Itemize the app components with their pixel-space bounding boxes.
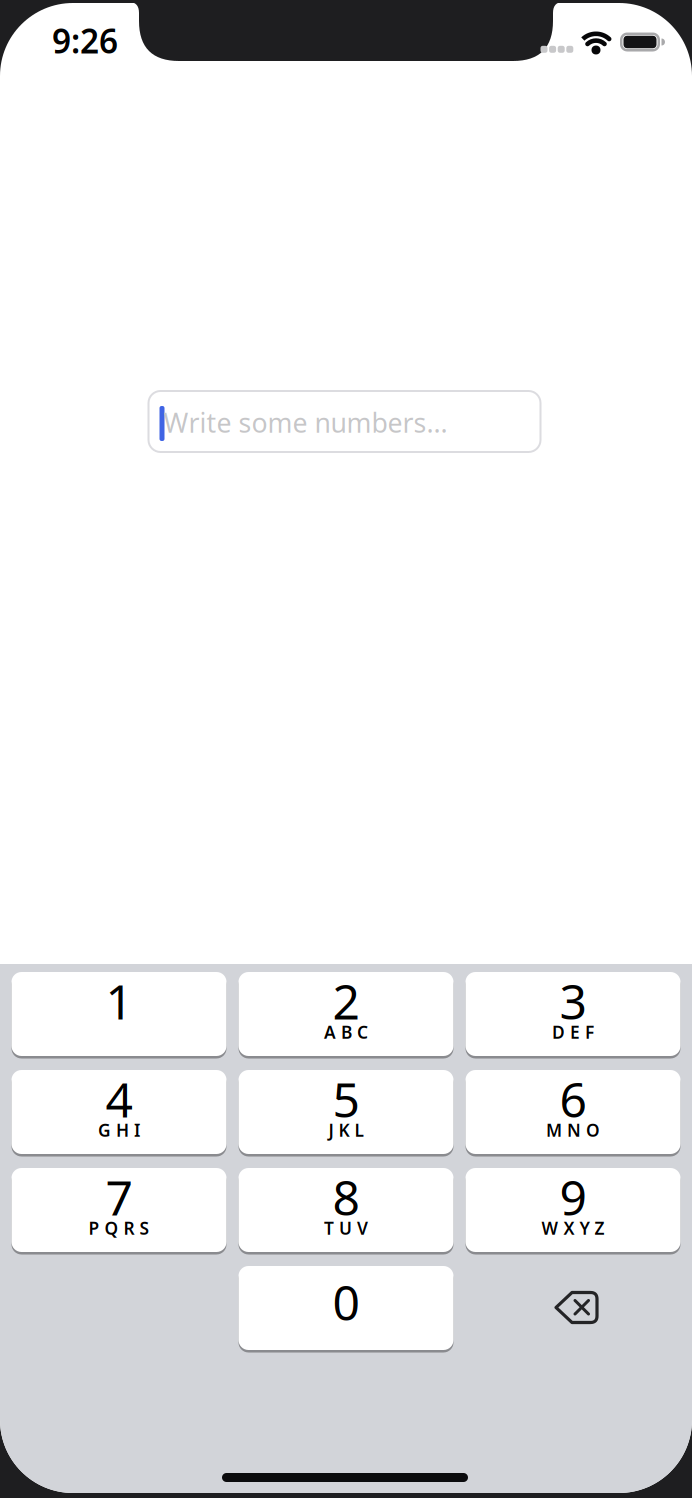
staticText: 6	[559, 1067, 586, 1131]
staticText: TUV	[324, 1216, 368, 1239]
button[interactable]: 8	[238, 1168, 453, 1255]
staticText: 9:26	[52, 18, 118, 63]
staticText: 1	[105, 969, 132, 1033]
staticText: 3	[559, 969, 586, 1033]
staticText: MNO	[546, 1118, 600, 1141]
staticText: 9	[559, 1165, 586, 1229]
button[interactable]: 2	[238, 972, 453, 1059]
staticText: DEF	[552, 1020, 594, 1043]
staticText: Write some numbers...	[163, 405, 447, 440]
staticText: 2	[332, 969, 359, 1033]
button[interactable]: Write some numbers	[147, 390, 541, 453]
button[interactable]: 6	[465, 1070, 680, 1157]
staticText: PQRS	[88, 1216, 149, 1239]
staticText: 8	[332, 1165, 359, 1229]
staticText: WXYZ	[541, 1216, 604, 1239]
button[interactable]: 9	[465, 1168, 680, 1255]
button[interactable]: 3	[465, 972, 680, 1059]
staticText: ABC	[324, 1020, 368, 1043]
staticText: JKL	[328, 1118, 363, 1141]
staticText: 5	[332, 1067, 359, 1131]
button[interactable]: 0	[238, 1266, 453, 1353]
button[interactable]: 4	[11, 1070, 226, 1157]
button[interactable]: 7	[11, 1168, 226, 1255]
staticText: GHI	[98, 1118, 140, 1141]
button[interactable]: 5	[238, 1070, 453, 1157]
button[interactable]: Delete	[465, 1266, 680, 1350]
staticText: 0	[332, 1270, 359, 1334]
staticText: 7	[105, 1165, 132, 1229]
staticText: 4	[105, 1067, 132, 1131]
button[interactable]: 1	[11, 972, 226, 1059]
